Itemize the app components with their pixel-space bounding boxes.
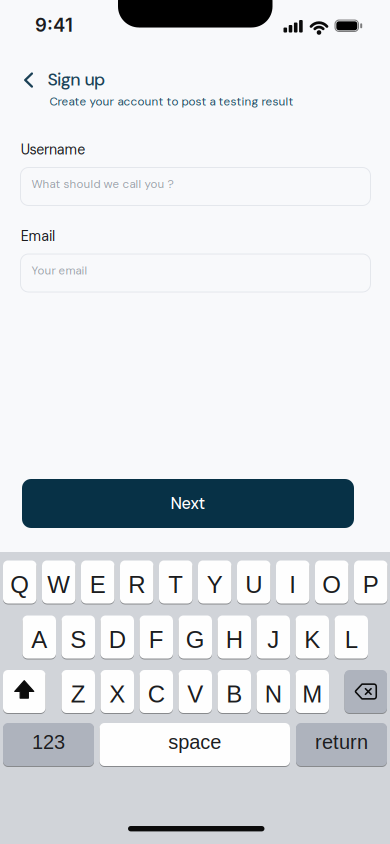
button[interactable]: Shift bbox=[3, 669, 45, 713]
button[interactable]: W bbox=[42, 560, 75, 604]
button[interactable]: L bbox=[334, 615, 368, 659]
staticText: Q bbox=[10, 571, 29, 598]
staticText: T bbox=[168, 571, 183, 598]
staticText: O bbox=[322, 571, 341, 598]
button[interactable]: E bbox=[81, 560, 114, 604]
button[interactable]: C bbox=[139, 669, 173, 713]
button[interactable]: space bbox=[99, 722, 290, 766]
button[interactable]: N bbox=[256, 669, 290, 713]
button[interactable]: Back bbox=[22, 68, 105, 91]
button[interactable]: return bbox=[296, 722, 387, 766]
staticText: K bbox=[304, 626, 320, 653]
staticText: M bbox=[302, 681, 322, 707]
staticText: Y bbox=[207, 571, 223, 598]
staticText: Next bbox=[170, 493, 205, 514]
button[interactable]: Y bbox=[198, 560, 231, 604]
button[interactable]: K bbox=[295, 615, 329, 659]
staticText: Email bbox=[21, 227, 55, 245]
button[interactable]: Your email bbox=[20, 253, 371, 292]
button[interactable]: O bbox=[315, 560, 348, 604]
staticText: X bbox=[109, 681, 125, 707]
staticText: P bbox=[363, 571, 379, 598]
button[interactable]: J bbox=[256, 615, 290, 659]
button[interactable]: G bbox=[178, 615, 212, 659]
staticText: F bbox=[149, 626, 164, 653]
button[interactable]: T bbox=[159, 560, 192, 604]
staticText: space bbox=[168, 731, 221, 753]
button[interactable]: A bbox=[22, 615, 56, 659]
staticText: Z bbox=[71, 681, 86, 707]
staticText: S bbox=[70, 626, 86, 653]
button[interactable]: D bbox=[100, 615, 134, 659]
button[interactable]: I bbox=[276, 560, 309, 604]
staticText: What should we call you ? bbox=[31, 176, 173, 191]
staticText: L bbox=[345, 626, 358, 653]
staticText: Your email bbox=[31, 263, 87, 278]
button[interactable]: Delete bbox=[344, 669, 387, 713]
button[interactable]: H bbox=[217, 615, 251, 659]
staticText: Sign up bbox=[47, 68, 105, 91]
staticText: C bbox=[148, 681, 165, 707]
button[interactable]: M bbox=[295, 669, 329, 713]
staticText: Username bbox=[21, 140, 85, 159]
button[interactable]: X bbox=[100, 669, 134, 713]
button[interactable]: V bbox=[178, 669, 212, 713]
button[interactable]: R bbox=[120, 560, 153, 604]
staticText: I bbox=[289, 571, 296, 598]
staticText: 123 bbox=[32, 731, 65, 753]
staticText: R bbox=[128, 571, 145, 598]
button[interactable]: P bbox=[354, 560, 387, 604]
staticText: 9:41 bbox=[35, 14, 73, 36]
button[interactable]: Z bbox=[61, 669, 95, 713]
staticText: J bbox=[267, 626, 279, 653]
staticText: A bbox=[31, 626, 47, 653]
button[interactable]: 123 bbox=[3, 722, 94, 766]
button[interactable]: F bbox=[139, 615, 173, 659]
staticText: N bbox=[265, 681, 282, 707]
staticText: V bbox=[187, 681, 203, 707]
staticText: B bbox=[226, 681, 242, 707]
button[interactable]: Next bbox=[22, 479, 354, 528]
staticText: H bbox=[226, 626, 243, 653]
button[interactable]: Q bbox=[3, 560, 36, 604]
button[interactable]: B bbox=[217, 669, 251, 713]
button[interactable]: U bbox=[237, 560, 270, 604]
staticText: W bbox=[47, 571, 70, 598]
staticText: G bbox=[186, 626, 205, 653]
button[interactable]: What should we call you ? bbox=[20, 167, 371, 206]
staticText: U bbox=[245, 571, 262, 598]
staticText: Create your account to post a testing re… bbox=[49, 94, 293, 109]
staticText: D bbox=[109, 626, 126, 653]
staticText: E bbox=[90, 571, 106, 598]
button[interactable]: S bbox=[61, 615, 95, 659]
staticText: return bbox=[315, 731, 368, 753]
